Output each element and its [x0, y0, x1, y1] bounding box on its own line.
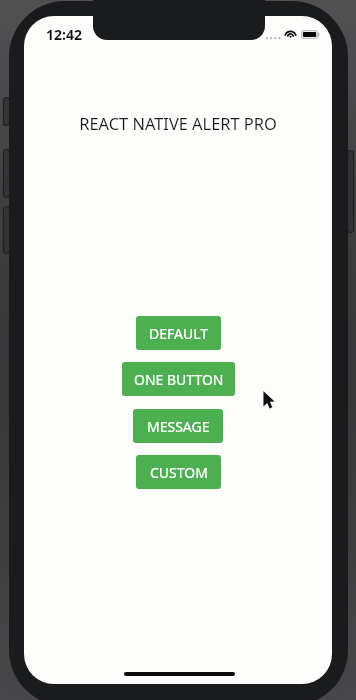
staticText: 12:42: [46, 25, 82, 44]
staticText: REACT NATIVE ALERT PRO: [24, 112, 332, 134]
button[interactable]: CUSTOM: [136, 455, 221, 489]
button[interactable]: DEFAULT: [136, 316, 221, 350]
button[interactable]: MESSAGE: [133, 409, 223, 443]
button[interactable]: ONE BUTTON: [122, 362, 235, 396]
staticText: DEFAULT: [149, 324, 209, 343]
staticText: ONE BUTTON: [134, 370, 224, 389]
staticText: MESSAGE: [147, 417, 210, 436]
staticText: CUSTOM: [150, 463, 208, 482]
